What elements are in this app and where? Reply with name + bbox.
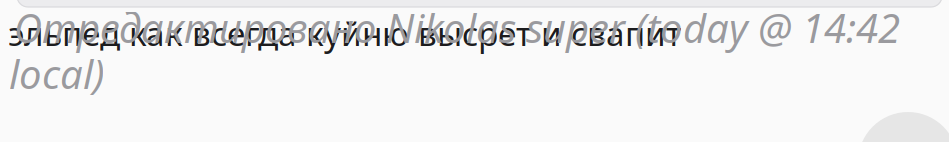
staticText: эльпед как всегда куйню высрет и свапит <box>8 11 682 55</box>
staticText: local) <box>9 47 105 100</box>
staticText: Отредактировано Nikolas super (today @ 1… <box>14 1 900 54</box>
